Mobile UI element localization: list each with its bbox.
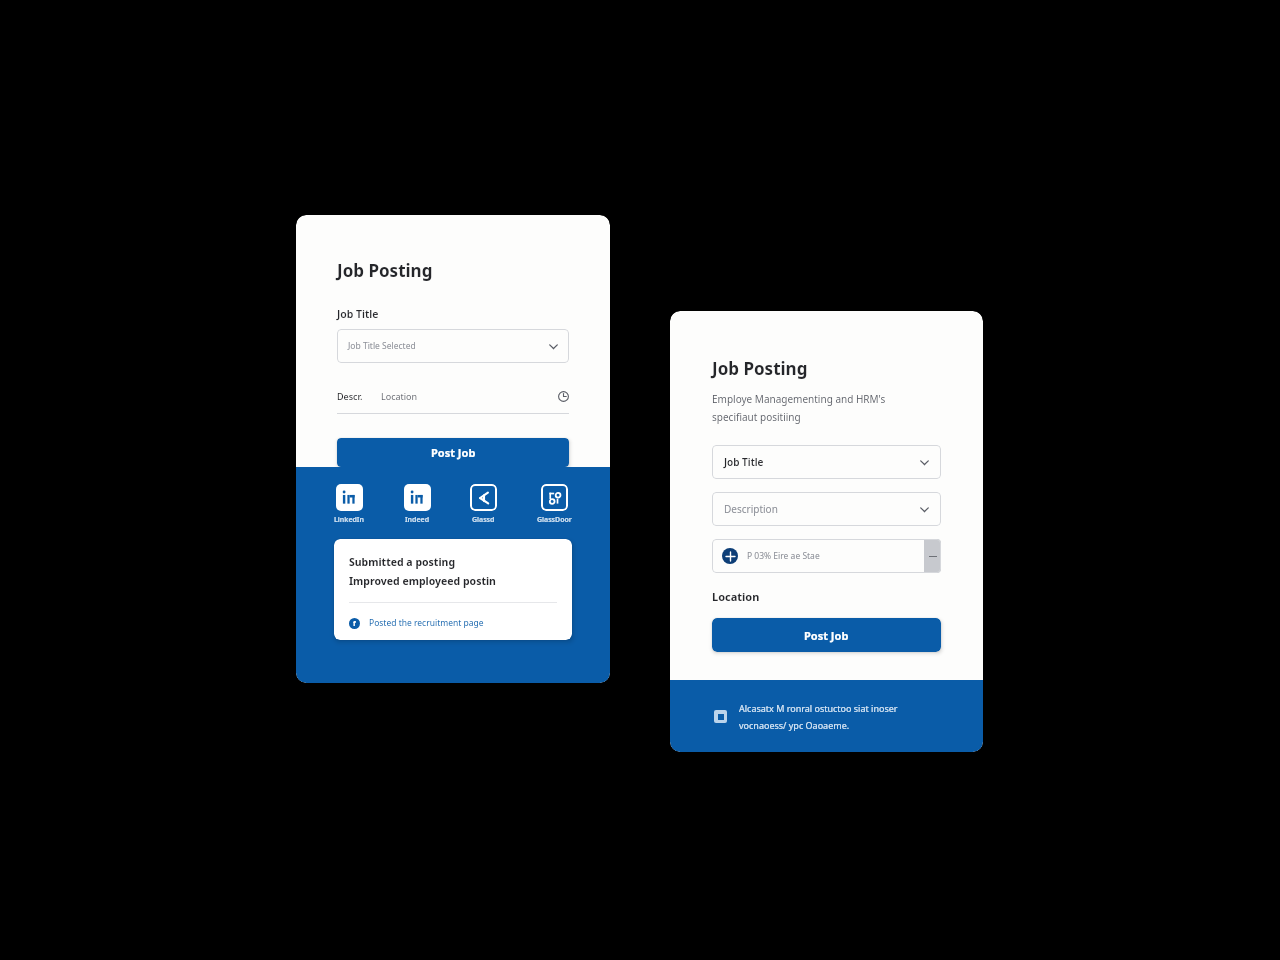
button[interactable]: Glassd <box>470 484 497 511</box>
staticText: Posted the recruitment page <box>369 617 484 629</box>
button[interactable]: Descr. <box>337 385 569 414</box>
staticText: Alcasatx M ronral ostuctoo siat inoser <box>739 702 898 714</box>
staticText: Job Title <box>724 455 764 469</box>
button[interactable]: Post Job <box>712 618 941 652</box>
staticText: Descr. <box>337 390 363 402</box>
staticText: Job Title Selected <box>348 340 416 352</box>
staticText: Job Title <box>337 307 379 321</box>
staticText: P 03% Eire ae Stae <box>747 550 820 562</box>
button[interactable]: GlassDoor <box>541 484 568 511</box>
staticText: Indeed <box>405 515 430 525</box>
button[interactable]: Alcasatx M ronral ostuctoo siat inoser <box>670 680 983 752</box>
staticText: Location <box>381 390 418 402</box>
button[interactable]: Job Title Selected <box>337 329 569 363</box>
button[interactable]: Description <box>712 492 941 526</box>
staticText: Employe Managementing and HRM's <box>712 392 886 406</box>
button[interactable]: LinkedIn <box>336 484 363 511</box>
button[interactable]: P 03% Eire ae Stae <box>712 539 941 573</box>
staticText: Job Posting <box>712 357 808 380</box>
staticText: specifiaut positiing <box>712 410 801 424</box>
button[interactable]: Submitted a posting <box>334 539 572 640</box>
staticText: Submitted a posting <box>349 555 456 569</box>
staticText: LinkedIn <box>334 515 364 525</box>
staticText: Glassd <box>472 515 495 525</box>
button[interactable]: Job Title <box>712 445 941 479</box>
staticText: f <box>353 619 356 629</box>
button[interactable]: Post Job <box>337 438 569 467</box>
staticText: vocnaoess/ ypc Oaoaeme. <box>739 719 850 731</box>
staticText: Improved employeed postin <box>349 574 496 588</box>
staticText: Location <box>712 589 760 604</box>
staticText: GlassDoor <box>537 515 572 525</box>
staticText: Job Posting <box>337 259 433 282</box>
staticText: Post Job <box>431 445 476 460</box>
staticText: Description <box>724 502 778 516</box>
button[interactable]: Indeed <box>404 484 431 511</box>
staticText: Post Job <box>804 628 849 643</box>
